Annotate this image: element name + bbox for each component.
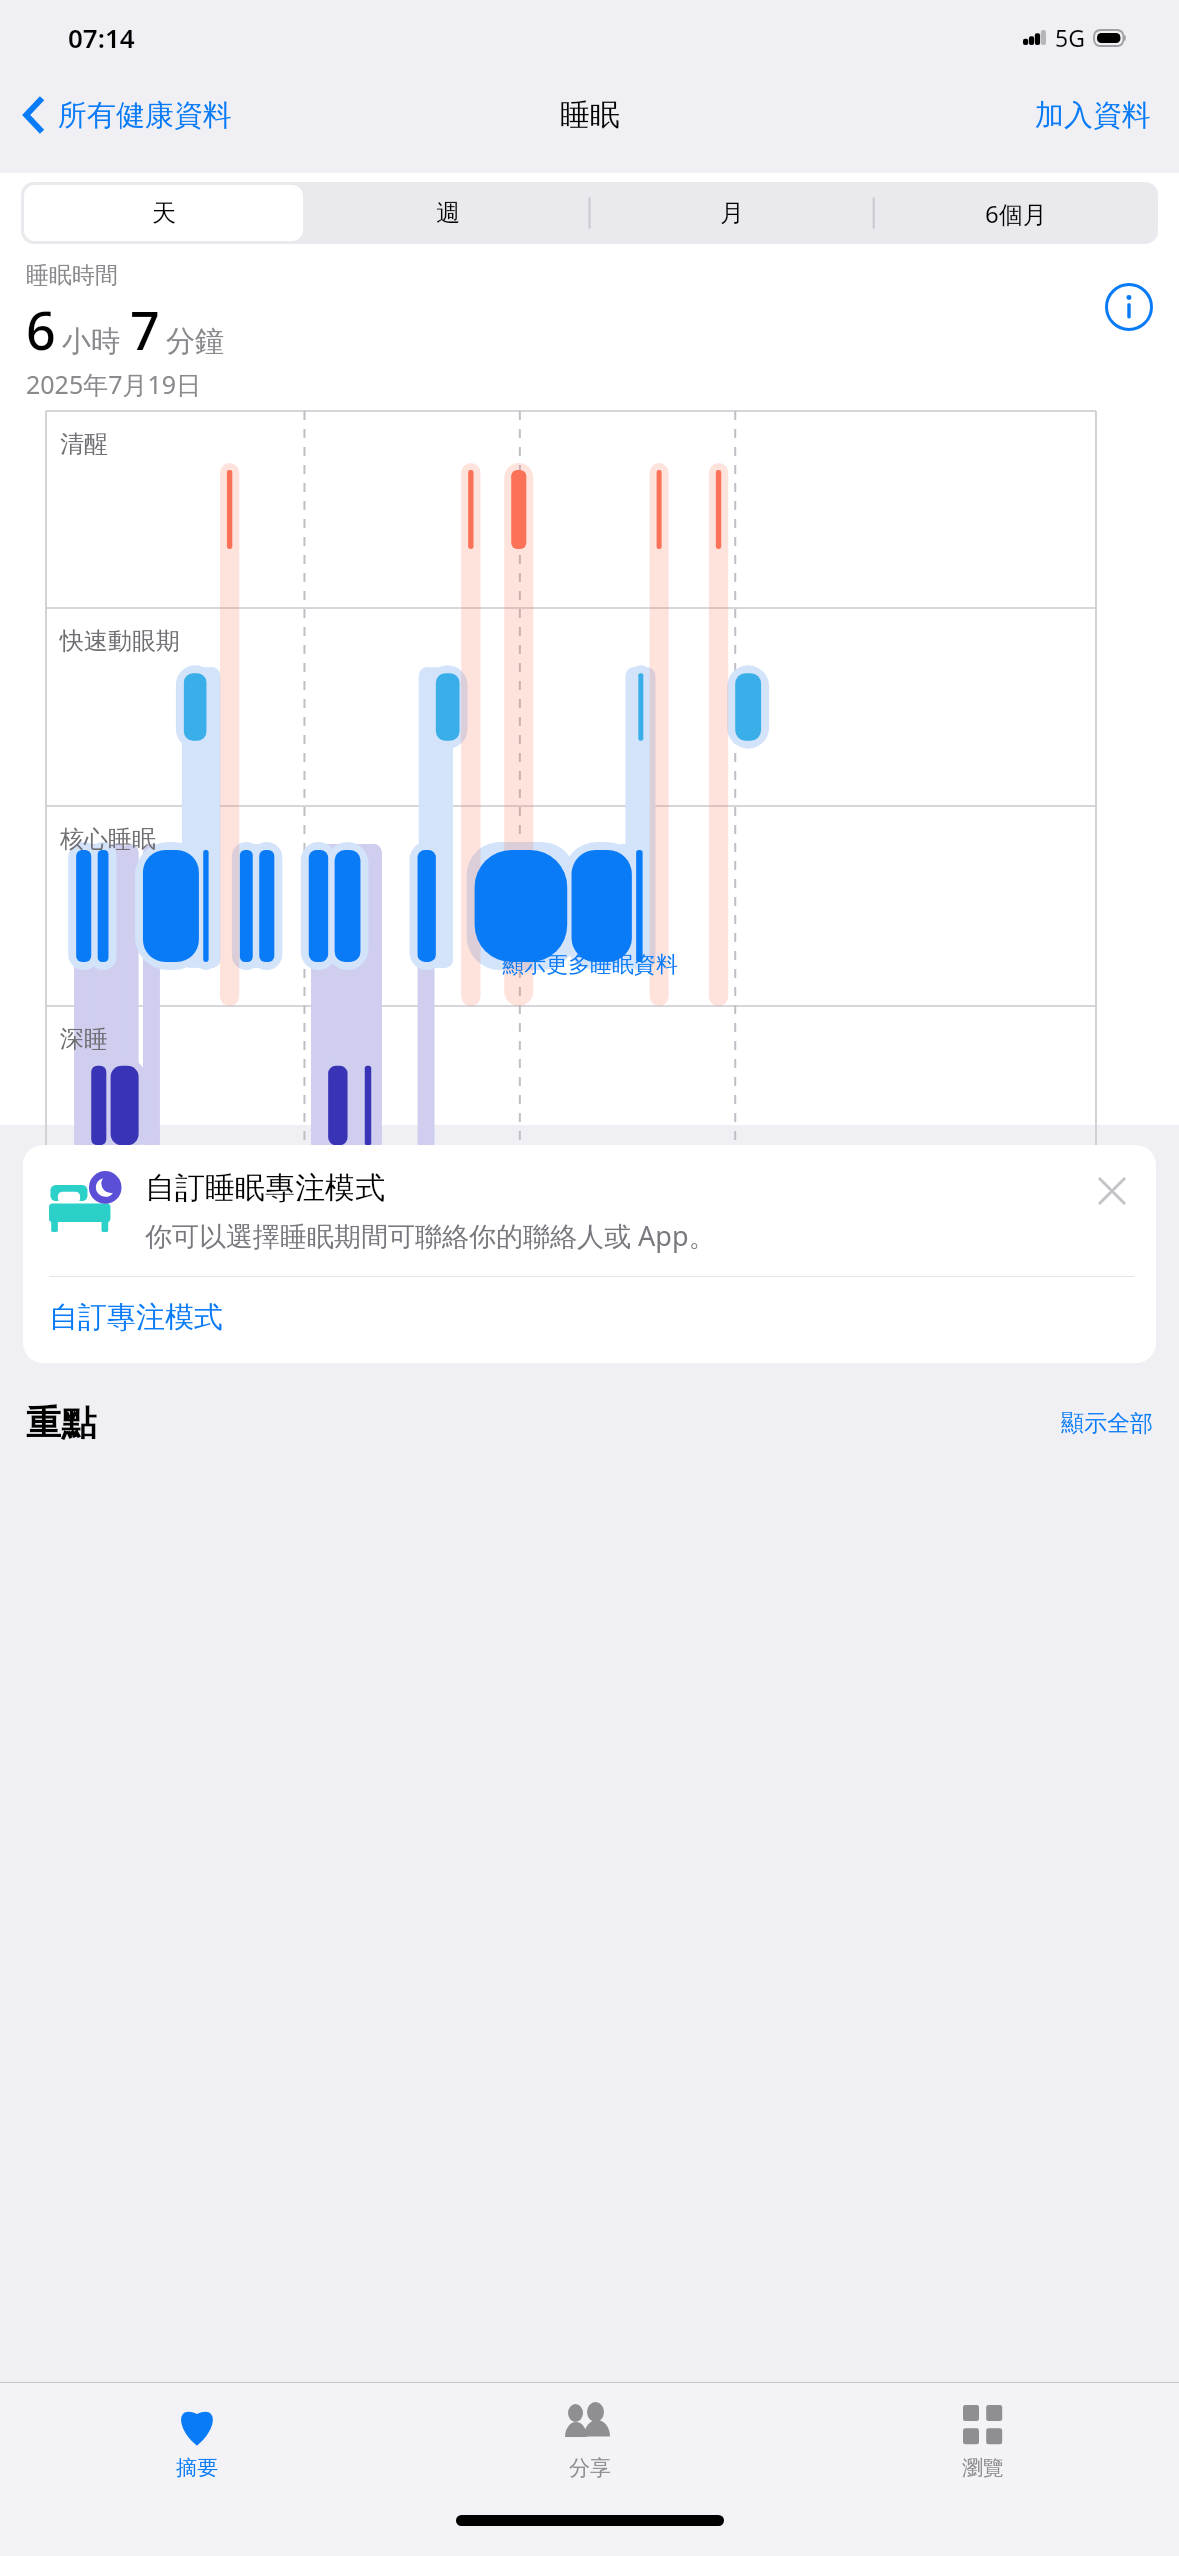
staticText: 快速動眼期: [60, 626, 180, 656]
button[interactable]: 月: [593, 185, 871, 241]
staticText: 清醒: [60, 429, 108, 459]
staticText: 你可以選擇睡眠期間可聯絡你的聯絡人或 App。: [145, 1217, 716, 1254]
staticText: 睡眠: [560, 96, 620, 134]
staticText: 所有健康資料: [58, 97, 232, 134]
staticText: 瀏覽: [962, 2455, 1004, 2481]
staticText: 加入資料: [1035, 97, 1151, 134]
staticText: 重點: [26, 1401, 96, 1445]
button[interactable]: 天: [24, 185, 303, 241]
button[interactable]: 關閉: [1090, 1169, 1134, 1213]
staticText: 摘要: [176, 2455, 218, 2481]
staticText: 自訂睡眠專注模式: [145, 1169, 385, 1207]
staticText: 分鐘: [166, 323, 224, 360]
staticText: 顯示更多睡眠資料: [502, 951, 678, 979]
button[interactable]: 所有健康資料: [24, 96, 232, 134]
staticText: 6: [26, 294, 56, 365]
staticText: 07:14: [68, 20, 135, 55]
staticText: 週: [436, 198, 460, 228]
staticText: 分享: [569, 2455, 611, 2481]
staticText: 02:00: [516, 1217, 580, 1251]
staticText: 月: [720, 198, 744, 228]
button[interactable]: 加入資料: [1035, 97, 1151, 134]
button[interactable]: 週: [309, 185, 587, 241]
staticText: 小時: [62, 323, 120, 360]
staticText: 5G: [1055, 22, 1085, 53]
button[interactable]: 6個月: [877, 185, 1155, 241]
staticText: 核心睡眠: [60, 824, 156, 854]
staticText: 6個月: [985, 197, 1047, 230]
staticText: 天: [152, 198, 176, 228]
button[interactable]: 分享: [393, 2383, 786, 2501]
staticText: 2025年7月19日: [26, 367, 202, 401]
staticText: 7: [130, 294, 160, 365]
staticText: 顯示全部: [1061, 1409, 1153, 1438]
button[interactable]: 瀏覽: [786, 2383, 1179, 2501]
staticText: 00:00: [300, 1217, 364, 1251]
button[interactable]: 顯示更多睡眠資料: [0, 942, 1179, 988]
staticText: 睡眠時間: [26, 261, 118, 290]
staticText: 自訂專注模式: [49, 1299, 223, 1336]
button[interactable]: 資訊: [1105, 283, 1153, 331]
button[interactable]: 摘要: [0, 2383, 393, 2501]
staticText: 22:00: [85, 1217, 149, 1251]
button[interactable]: 顯示全部: [1061, 1409, 1153, 1438]
button[interactable]: 自訂專注模式: [49, 1277, 1134, 1357]
staticText: 深睡: [60, 1024, 108, 1054]
